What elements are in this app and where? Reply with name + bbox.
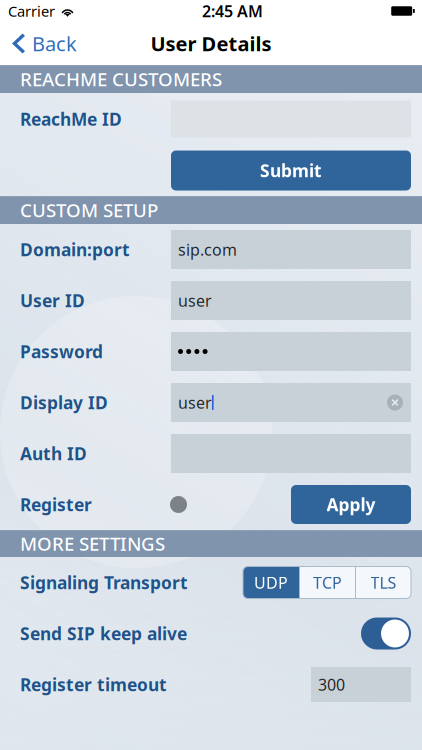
staticText: REACHME CUSTOMERS [20,67,222,91]
staticText: Password [20,340,103,363]
button[interactable]: TLS [356,566,411,598]
staticText: Domain:port [20,238,130,261]
button[interactable]: Apply [291,485,411,524]
staticText: Carrier [8,1,55,21]
staticText: user [178,392,212,413]
staticText: sip.com [178,239,237,260]
staticText: MORE SETTINGS [20,531,165,556]
button[interactable]: TCP [300,566,355,598]
staticText: TCP [313,572,342,593]
staticText: Submit [260,159,322,182]
staticText: Register [20,493,92,516]
staticText: CUSTOM SETUP [20,198,158,222]
staticText: TLS [370,572,396,593]
button[interactable]: Submit [171,150,411,190]
staticText: User Details [150,30,271,57]
staticText: 300 [318,674,345,695]
staticText: UDP [254,572,288,593]
button[interactable]: Back [0,22,89,65]
staticText: 2:45 AM [202,0,263,22]
staticText: Auth ID [20,442,87,465]
staticText: Signaling Transport [20,571,188,594]
staticText: Register timeout [20,673,167,696]
staticText: Send SIP keep alive [20,622,187,645]
staticText: User ID [20,289,85,312]
staticText: Apply [326,493,375,516]
staticText: Back [32,30,77,57]
staticText: Display ID [20,391,108,414]
staticText: ReachMe ID [20,107,122,130]
button[interactable]: Send SIP keep alive [361,617,411,649]
button[interactable]: UDP [243,566,299,598]
staticText: user [178,290,212,311]
